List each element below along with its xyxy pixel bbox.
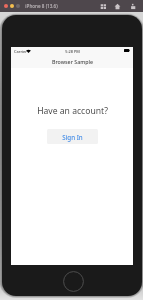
- button[interactable]: Home: [114, 3, 121, 10]
- button[interactable]: Close: [4, 4, 8, 8]
- button[interactable]: Sign In: [47, 129, 98, 144]
- staticText: Carrier: [14, 49, 27, 54]
- staticText: Have an account?: [37, 105, 108, 117]
- staticText: 5:28 PM: [65, 49, 80, 54]
- staticText: Sign In: [62, 133, 83, 141]
- button[interactable]: Minimize: [10, 4, 14, 8]
- button[interactable]: Home button: [63, 271, 84, 292]
- button[interactable]: Zoom: [16, 4, 20, 8]
- button[interactable]: Screenshot: [100, 3, 107, 10]
- staticText: Browser Sample: [52, 58, 93, 65]
- staticText: iPhone 8 (13.6): [25, 3, 58, 9]
- button[interactable]: More options: [129, 3, 136, 10]
